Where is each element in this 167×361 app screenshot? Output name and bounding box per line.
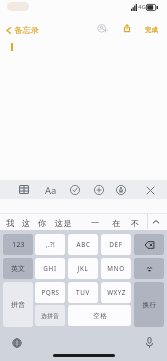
button[interactable]: DEF (101, 234, 131, 255)
button[interactable]: PQRS (35, 282, 65, 303)
button[interactable]: 空格 (68, 305, 131, 326)
staticText: 空格 (93, 312, 107, 320)
staticText: 这 (22, 218, 31, 228)
staticText: DEF (109, 240, 123, 249)
staticText: 你 (38, 218, 47, 228)
button[interactable]: MNO (101, 258, 131, 279)
button[interactable]: Share (122, 23, 132, 33)
button[interactable]: Voice input (144, 337, 155, 348)
button[interactable]: Close keyboard (146, 186, 155, 195)
button[interactable]: Aa (44, 184, 58, 197)
staticText: TUV (76, 288, 90, 297)
button[interactable]: Emoji (134, 258, 164, 279)
button[interactable]: ABC (68, 234, 98, 255)
staticText: ABC (76, 240, 91, 249)
button[interactable]: 这 (22, 218, 31, 228)
staticText: 一 (91, 218, 100, 228)
button[interactable]: 完成 (143, 25, 161, 35)
button[interactable]: 一 (91, 218, 100, 228)
button[interactable]: Add attachment (94, 185, 104, 195)
staticText: 英文 (11, 264, 25, 273)
button[interactable]: TUV (68, 282, 98, 303)
staticText: 123 (12, 240, 25, 249)
button[interactable]: 备忘录 (4, 25, 41, 35)
staticText: WXYZ (107, 288, 126, 297)
button[interactable]: Add people (97, 23, 108, 34)
button[interactable]: 123 (3, 234, 33, 255)
button[interactable]: GHI (35, 258, 65, 279)
staticText: 拼音 (11, 300, 25, 309)
button[interactable]: ,.?! (35, 234, 65, 255)
button[interactable]: 这是 (55, 218, 72, 228)
button[interactable]: 选拼音 (35, 305, 65, 326)
staticText: MNO (107, 264, 125, 273)
staticText: 不 (131, 218, 140, 228)
button[interactable]: 在 (112, 218, 121, 228)
button[interactable]: 不 (131, 218, 140, 228)
button[interactable]: Backspace (134, 234, 164, 255)
staticText: 选拼音 (41, 312, 59, 320)
staticText: ,.?! (46, 240, 55, 249)
staticText: 我 (6, 218, 15, 228)
button[interactable]: 拼音 (3, 282, 33, 327)
button[interactable]: Expand candidates (150, 216, 162, 228)
staticText: 换行 (142, 301, 157, 309)
button[interactable]: Switch keyboard (12, 338, 22, 348)
button[interactable]: 我 (6, 218, 15, 228)
staticText: 4G (138, 3, 146, 11)
button[interactable]: Checklist (70, 185, 80, 195)
button[interactable]: WXYZ (101, 282, 131, 303)
staticText: GHI (43, 264, 57, 273)
staticText: PQRS (41, 288, 60, 297)
button[interactable]: Markup (116, 185, 126, 195)
staticText: 在 (112, 218, 121, 228)
staticText: 这是 (55, 218, 72, 228)
button[interactable]: JKL (68, 258, 98, 279)
button[interactable]: 英文 (3, 258, 33, 279)
staticText: JKL (77, 264, 89, 273)
button[interactable]: 换行 (134, 282, 164, 327)
button[interactable]: Table (19, 185, 29, 194)
staticText: Aa (45, 184, 57, 197)
button[interactable]: 你 (38, 218, 47, 228)
staticText: 完成 (145, 26, 159, 34)
staticText: 备忘录 (14, 25, 39, 35)
